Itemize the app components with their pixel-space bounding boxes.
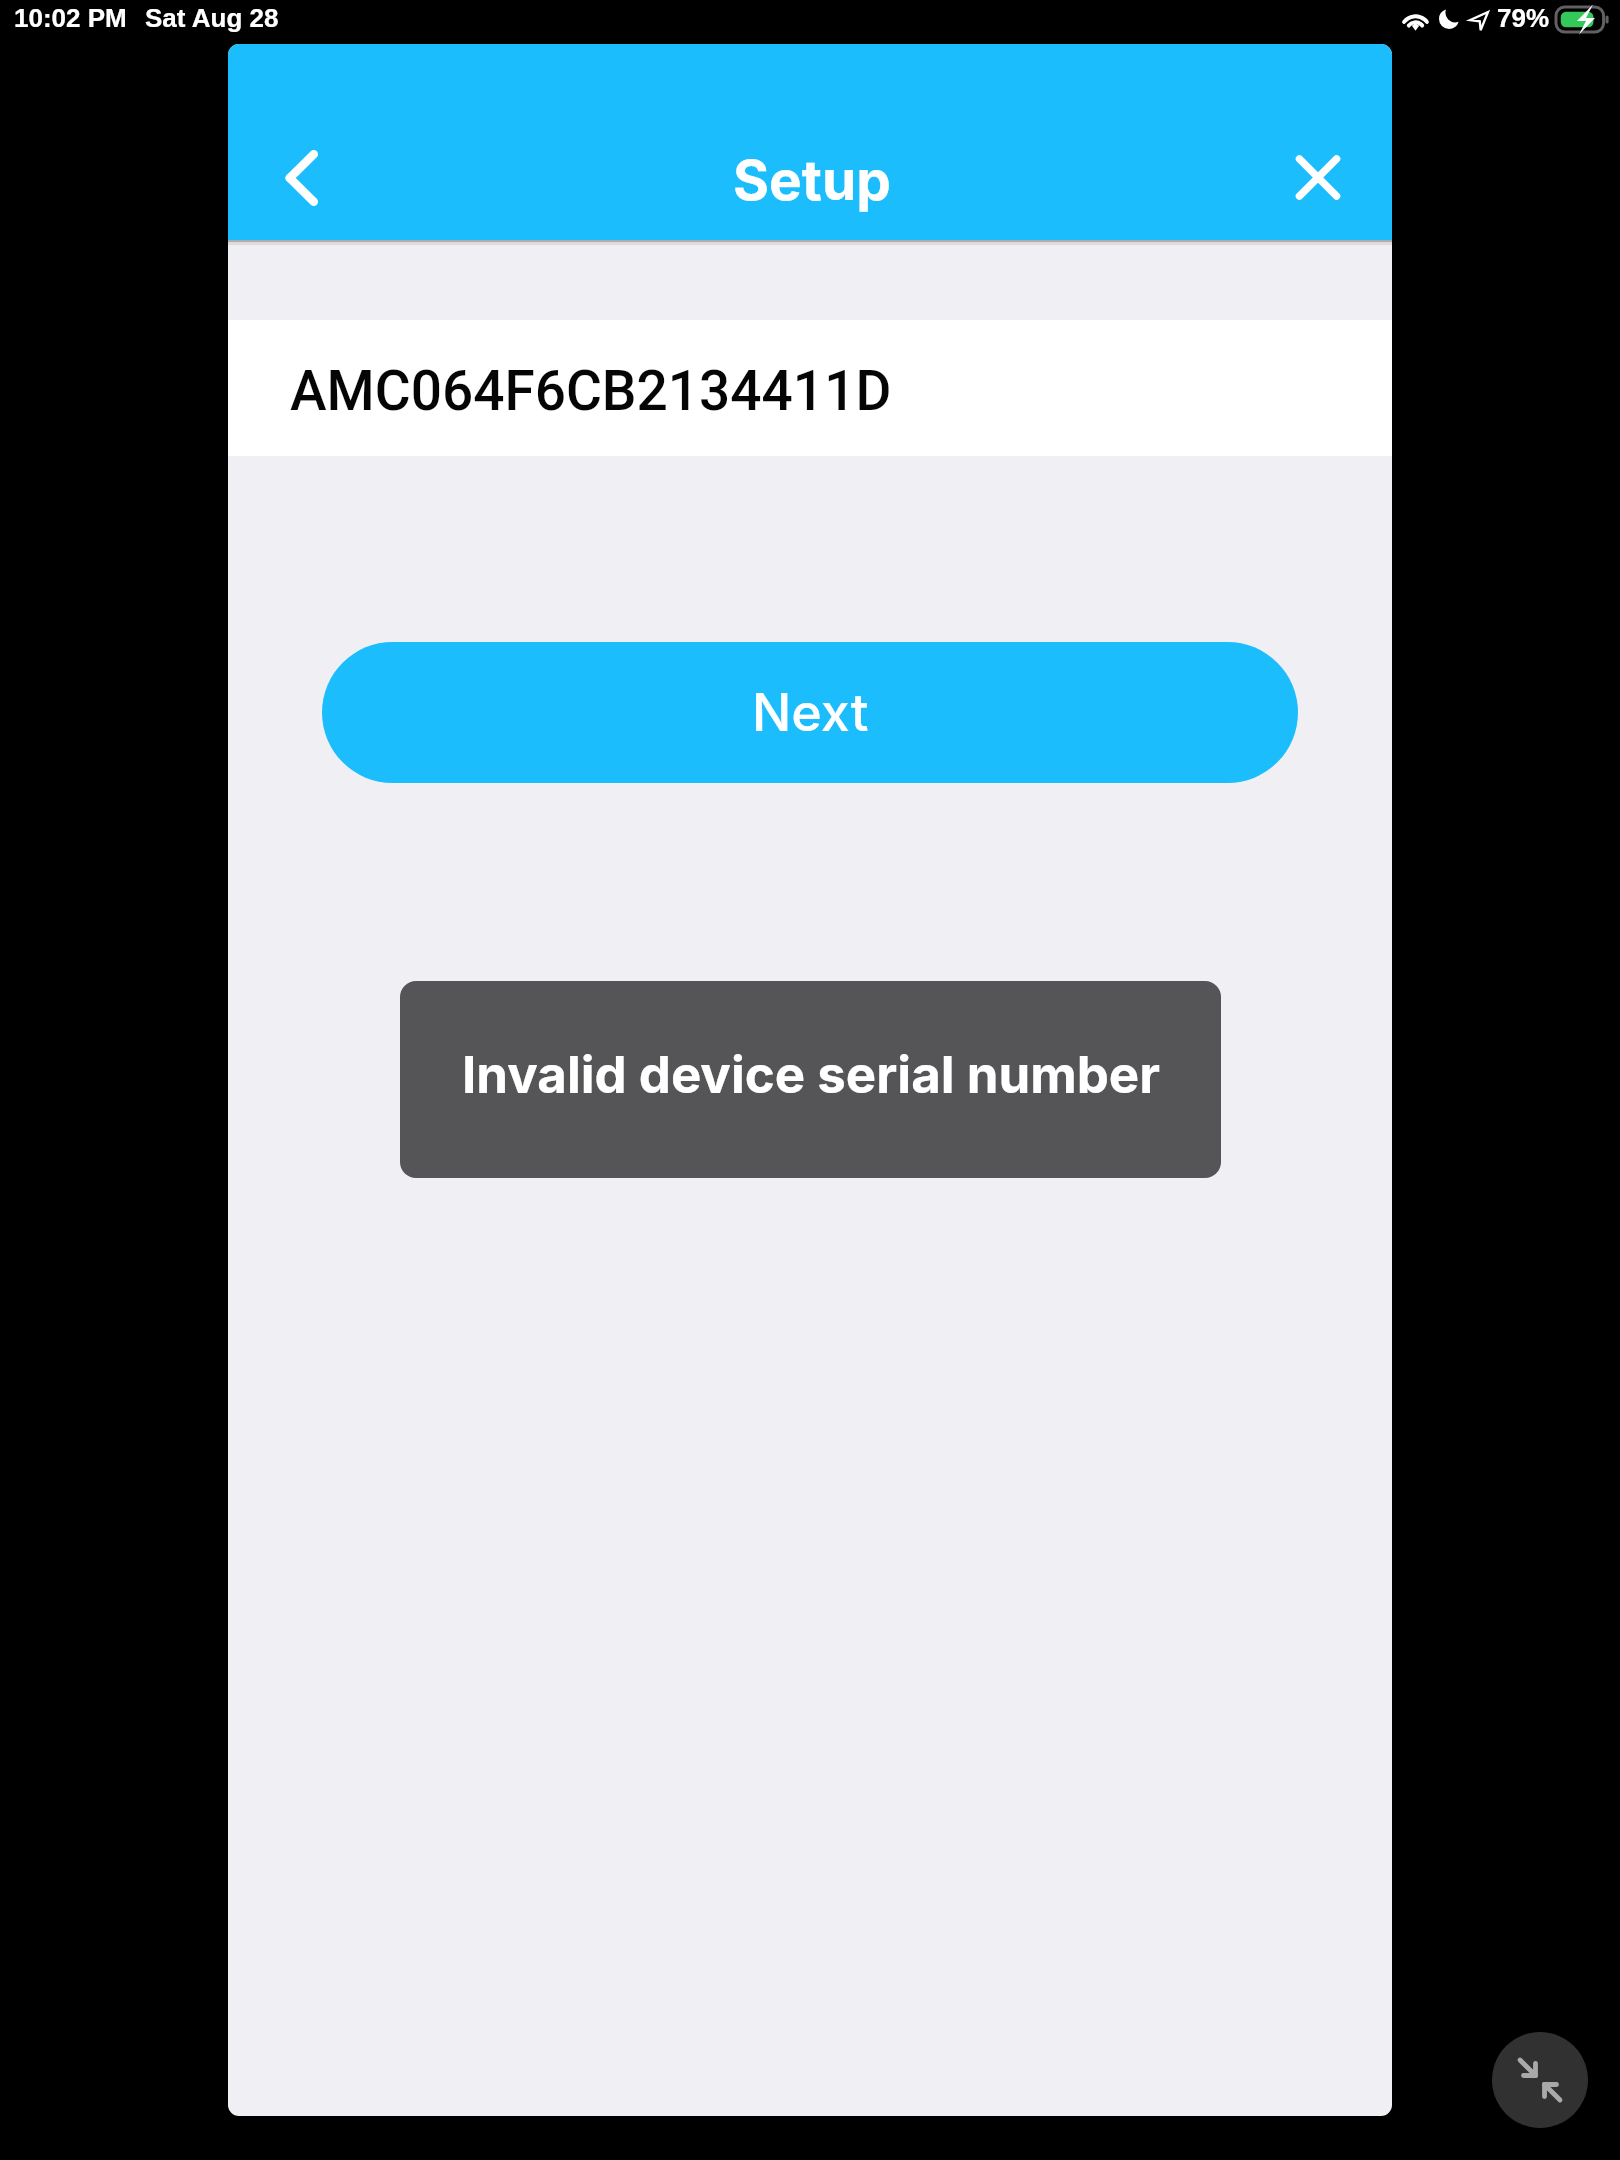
staticText: Setup [733, 147, 891, 214]
button[interactable]: Back [256, 122, 368, 234]
staticText: Invalid device serial number [462, 1044, 1160, 1106]
staticText: Next [752, 681, 869, 744]
button[interactable]: AMC064F6CB2134411D [228, 320, 1392, 456]
staticText: Sat Aug 28 [145, 3, 279, 32]
staticText: AMC064F6CB2134411D [290, 359, 892, 423]
staticText: 10:02 PM [14, 3, 127, 32]
button[interactable]: Exit zoom [1492, 2032, 1588, 2128]
button[interactable]: Next [322, 642, 1298, 783]
button[interactable]: Close [1262, 122, 1374, 234]
staticText: 79% [1497, 3, 1550, 32]
